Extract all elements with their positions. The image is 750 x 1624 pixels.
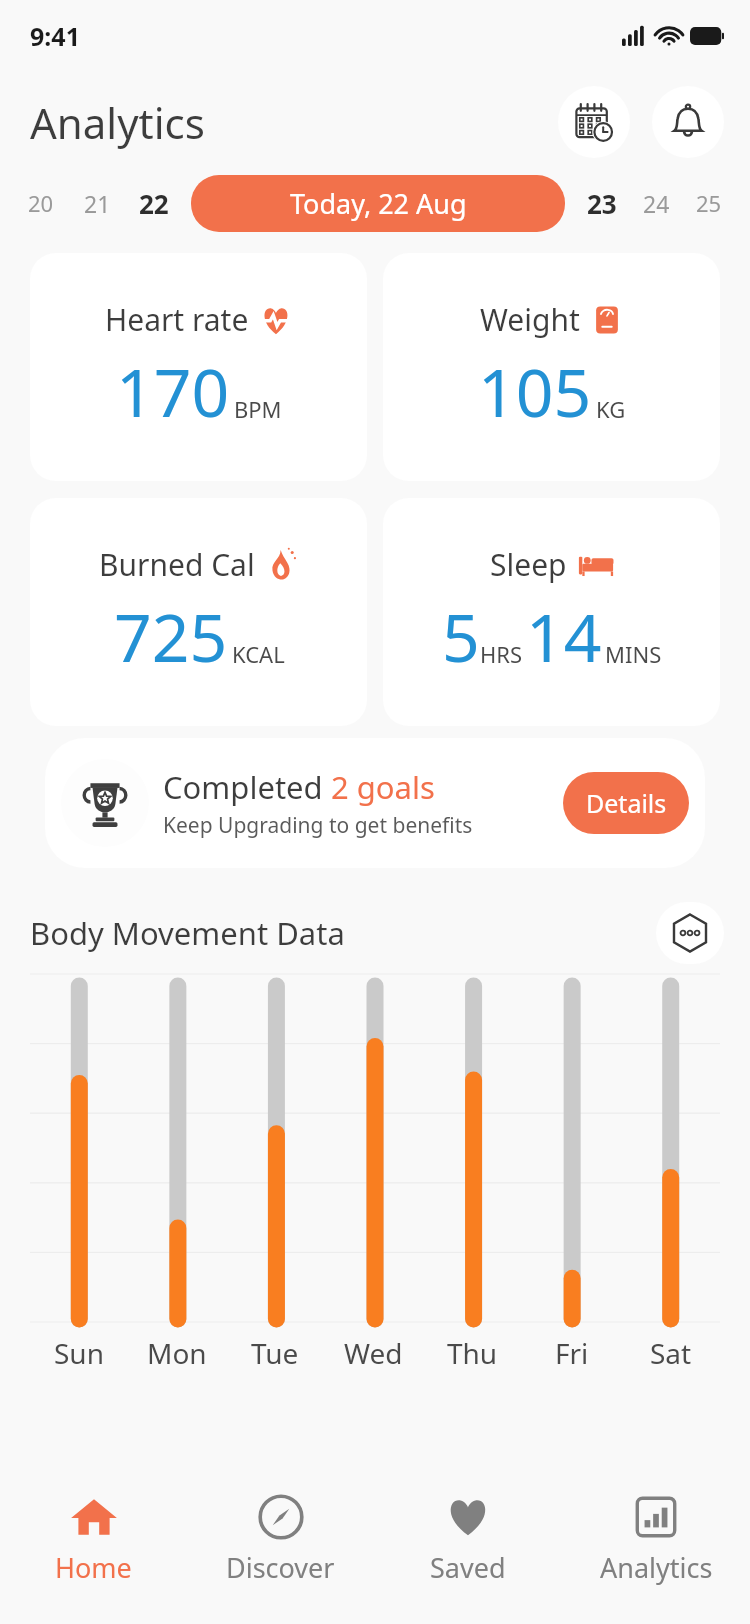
staticText: Sleep [490, 544, 567, 585]
staticText: Heart rate [105, 299, 249, 340]
staticText: Keep Upgrading to get benefits [163, 811, 473, 840]
button[interactable]: 23 [587, 186, 617, 221]
button[interactable]: 25 [696, 188, 722, 218]
button[interactable]: Weight [383, 253, 720, 481]
button[interactable]: 20 [28, 188, 54, 218]
staticText: Thu [447, 1334, 498, 1372]
staticText: Burned Cal [99, 544, 255, 585]
staticText: Analytics [30, 94, 205, 151]
staticText: HRS [480, 639, 523, 669]
staticText: 5 [442, 591, 480, 681]
staticText: 170 [116, 346, 230, 436]
button[interactable]: Details [563, 772, 689, 834]
button[interactable]: More options [656, 902, 724, 964]
button[interactable]: Saved [374, 1478, 562, 1598]
staticText: 2 goals [331, 766, 435, 808]
staticText: 21 [84, 188, 111, 219]
staticText: KCAL [232, 639, 285, 669]
staticText: 24 [643, 188, 670, 219]
staticText: 25 [696, 188, 722, 218]
staticText: Saved [430, 1549, 506, 1586]
staticText: 23 [587, 186, 617, 221]
button[interactable]: Calendar schedule [558, 86, 630, 158]
staticText: Fri [555, 1334, 589, 1372]
button[interactable]: Home [0, 1478, 187, 1598]
staticText: KG [596, 394, 626, 424]
staticText: 105 [478, 346, 592, 436]
staticText: Completed [163, 766, 331, 808]
staticText: 22 [139, 186, 169, 221]
button[interactable]: Notifications [652, 86, 724, 158]
button[interactable]: Analytics [562, 1478, 750, 1598]
staticText: 725 [114, 591, 228, 681]
staticText: Discover [226, 1549, 335, 1586]
staticText: Tue [251, 1334, 299, 1372]
button[interactable]: 24 [643, 188, 670, 219]
staticText: 9:41 [30, 19, 80, 53]
staticText: Body Movement Data [30, 912, 345, 954]
staticText: Today, 22 Aug [290, 185, 467, 222]
staticText: Mon [147, 1334, 207, 1372]
button[interactable]: Today, 22 Aug [191, 175, 565, 232]
staticText: Analytics [600, 1549, 713, 1586]
button[interactable]: Burned Cal [30, 498, 367, 726]
button[interactable]: Heart rate [30, 253, 367, 481]
staticText: BPM [234, 394, 282, 424]
button[interactable]: 22 [139, 186, 169, 221]
staticText: 14 [526, 591, 602, 681]
staticText: Details [586, 786, 667, 820]
staticText: Wed [344, 1334, 403, 1372]
staticText: MINS [605, 639, 662, 669]
button[interactable]: Sleep [383, 498, 720, 726]
staticText: Sat [650, 1334, 692, 1372]
button[interactable]: Discover [187, 1478, 374, 1598]
staticText: 20 [28, 188, 54, 218]
button[interactable]: 21 [84, 188, 111, 219]
staticText: Home [55, 1549, 132, 1586]
button[interactable]: Completed [45, 738, 705, 868]
staticText: Sun [54, 1334, 104, 1372]
staticText: Weight [480, 299, 580, 340]
